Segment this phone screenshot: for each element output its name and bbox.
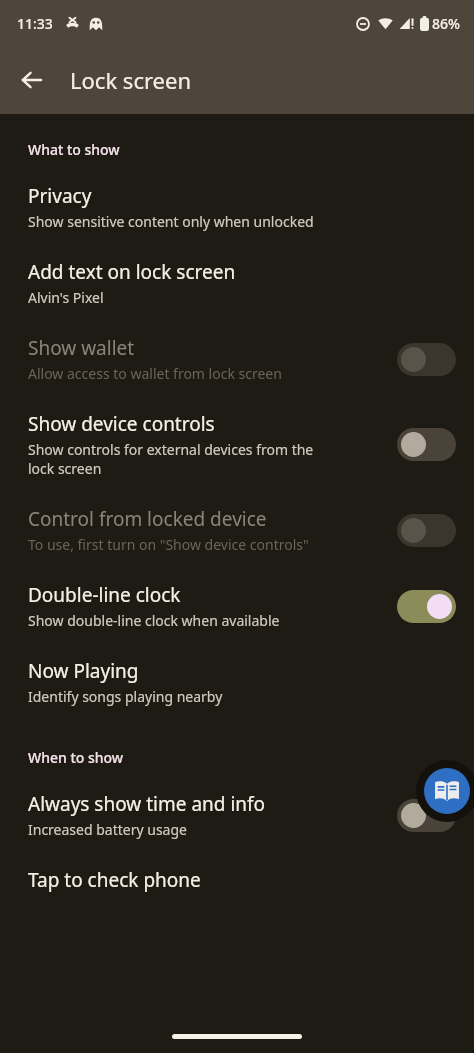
staticText: Lock screen	[70, 65, 192, 95]
staticText: To use, first turn on "Show device contr…	[28, 535, 309, 554]
staticText: Control from locked device	[28, 506, 267, 532]
button[interactable]: Reading mode	[416, 760, 474, 822]
staticText: Tap to check phone	[28, 867, 201, 893]
staticText: Show wallet	[28, 335, 135, 361]
button[interactable]: Control from locked device	[0, 492, 474, 568]
staticText: Always show time and info	[28, 791, 266, 817]
button[interactable]: On	[397, 590, 456, 623]
button[interactable]: Show wallet	[0, 321, 474, 397]
staticText: Double-line clock	[28, 582, 181, 608]
button[interactable]: Off	[397, 514, 456, 547]
button[interactable]: Privacy	[0, 169, 474, 245]
staticText: Allow access to wallet from lock screen	[28, 364, 282, 383]
button[interactable]: Add text on lock screen	[0, 245, 474, 321]
staticText: Show device controls	[28, 411, 215, 437]
staticText: Privacy	[28, 183, 92, 209]
staticText: Show controls for external devices from …	[28, 440, 314, 478]
staticText: Show sensitive content only when unlocke…	[28, 212, 314, 231]
staticText: 11:33	[17, 14, 53, 33]
button[interactable]: Off	[397, 428, 456, 461]
staticText: Add text on lock screen	[28, 259, 236, 285]
staticText: Now Playing	[28, 658, 139, 684]
button[interactable]: Now Playing	[0, 644, 474, 720]
staticText: Increased battery usage	[28, 820, 187, 839]
button[interactable]: Off	[397, 799, 456, 832]
button[interactable]: Always show time and info	[0, 777, 474, 853]
button[interactable]: Show device controls	[0, 397, 474, 492]
button[interactable]: Tap to check phone	[0, 853, 474, 907]
staticText: Alvin's Pixel	[28, 288, 104, 307]
staticText: When to show	[28, 748, 124, 767]
button[interactable]: Double-line clock	[0, 568, 474, 644]
button[interactable]: Back	[8, 56, 56, 104]
staticText: 86%	[432, 14, 460, 33]
staticText: Identify songs playing nearby	[28, 687, 223, 706]
staticText: Show double-line clock when available	[28, 611, 280, 630]
staticText: What to show	[28, 140, 120, 159]
button[interactable]: Off	[397, 343, 456, 376]
